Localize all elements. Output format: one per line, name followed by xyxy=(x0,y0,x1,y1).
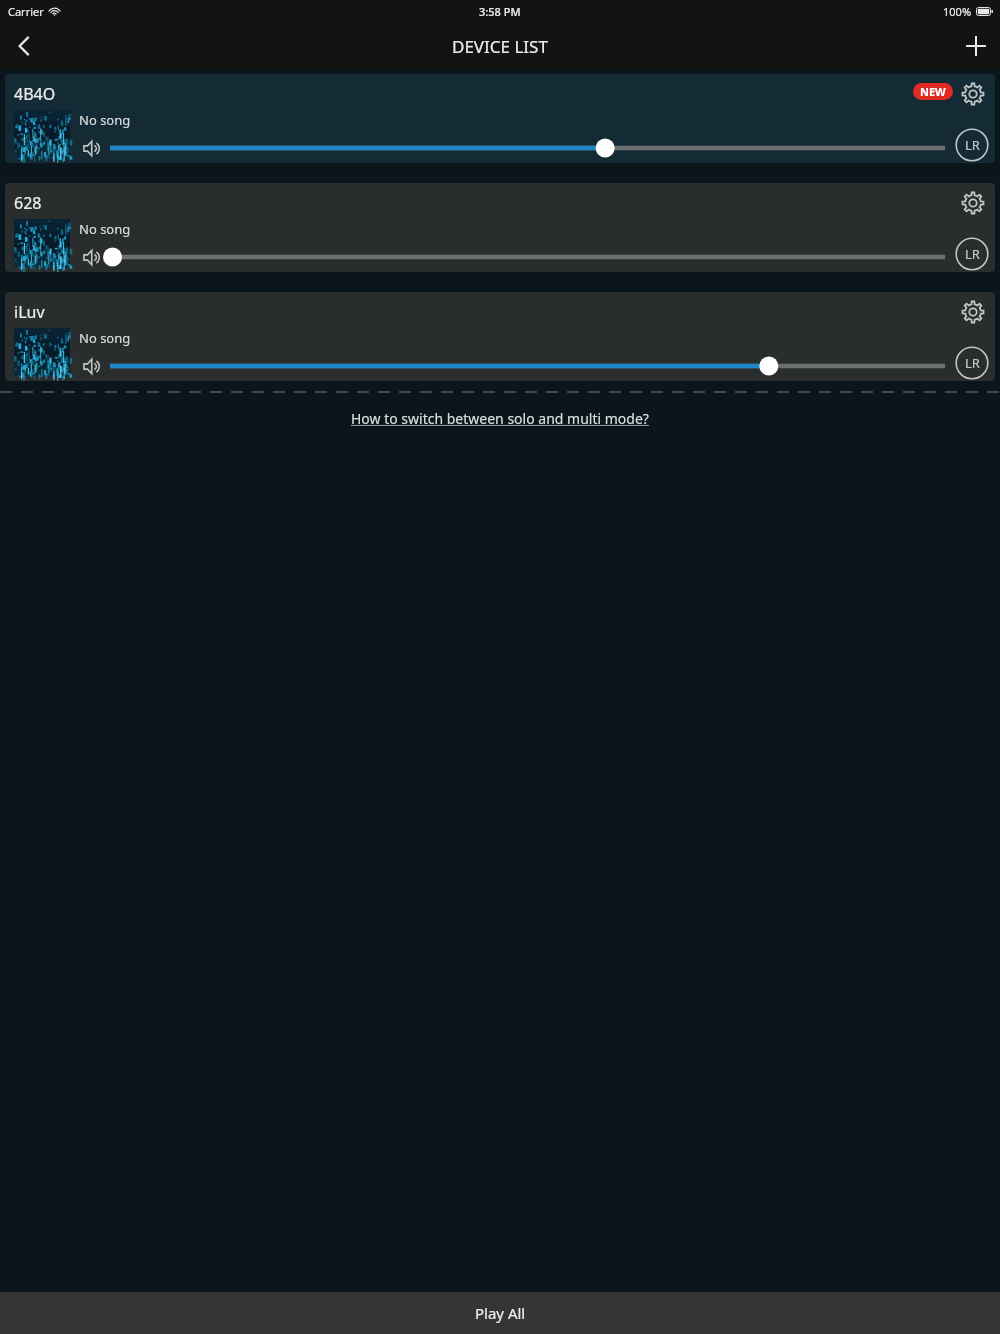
button[interactable]: Add device xyxy=(952,22,1000,70)
staticText: No song xyxy=(79,220,131,238)
button[interactable]: Back xyxy=(0,22,48,70)
button[interactable]: How to switch between solo and multi mod… xyxy=(339,404,661,433)
staticText: DEVICE LIST xyxy=(452,35,548,58)
button[interactable]: Device settings xyxy=(955,185,991,221)
button[interactable]: LR xyxy=(955,346,989,380)
button[interactable] xyxy=(14,110,70,158)
button[interactable] xyxy=(14,328,70,376)
button[interactable] xyxy=(110,131,945,163)
button[interactable]: 628 xyxy=(5,183,995,272)
staticText: Play All xyxy=(475,1303,526,1323)
staticText: 628 xyxy=(14,192,42,214)
staticText: iLuv xyxy=(14,301,45,323)
button[interactable]: NEW xyxy=(913,83,953,100)
staticText: Carrier xyxy=(8,4,44,19)
staticText: No song xyxy=(79,111,131,129)
staticText: No song xyxy=(79,329,131,347)
staticText: 100% xyxy=(943,4,972,19)
button[interactable]: Volume xyxy=(78,134,106,162)
button[interactable]: Volume xyxy=(78,243,106,271)
staticText: 3:58 PM xyxy=(479,4,521,19)
staticText: 4B4O xyxy=(14,83,56,105)
staticText: NEW xyxy=(920,84,946,99)
button[interactable]: Device settings xyxy=(955,76,991,112)
button[interactable]: Play All xyxy=(0,1292,1000,1334)
button[interactable] xyxy=(110,349,945,381)
button[interactable]: iLuv xyxy=(5,292,995,381)
button[interactable]: Volume xyxy=(78,352,106,380)
button[interactable] xyxy=(14,219,70,267)
staticText: LR xyxy=(965,354,980,372)
staticText: LR xyxy=(965,245,980,263)
button[interactable]: LR xyxy=(955,237,989,271)
button[interactable]: Device settings xyxy=(955,294,991,330)
button[interactable] xyxy=(110,240,945,272)
staticText: How to switch between solo and multi mod… xyxy=(351,409,649,428)
button[interactable]: 4B4O xyxy=(5,74,995,163)
button[interactable]: LR xyxy=(955,128,989,162)
staticText: LR xyxy=(965,136,980,154)
